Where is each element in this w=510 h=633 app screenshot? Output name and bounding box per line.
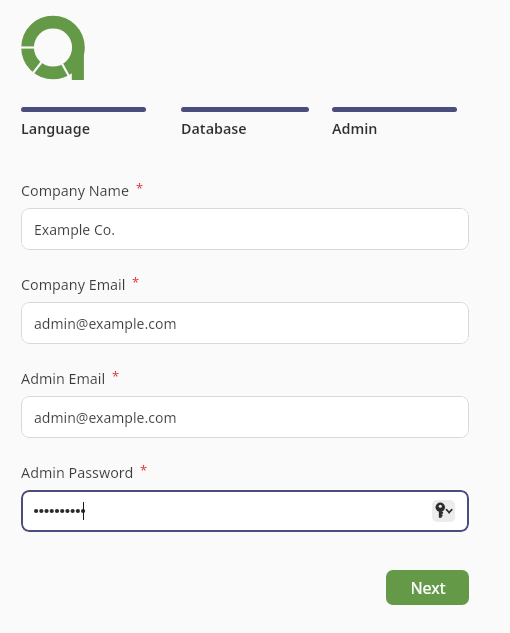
staticText: admin@example.com (34, 314, 177, 333)
staticText: Company Email (21, 275, 126, 294)
staticText: Language (21, 119, 91, 138)
staticText: Admin Email (21, 369, 106, 388)
staticText: * (140, 461, 148, 479)
button[interactable]: Password manager (21, 490, 469, 532)
button[interactable]: admin@example.com (21, 302, 469, 344)
staticText: * (112, 367, 120, 385)
button[interactable]: Next (386, 570, 469, 605)
staticText: Company Name (21, 181, 130, 200)
button[interactable]: Password manager (432, 500, 455, 522)
staticText: Admin Password (21, 463, 134, 482)
button[interactable]: admin@example.com (21, 396, 469, 438)
staticText: Admin (332, 119, 378, 138)
staticText: admin@example.com (34, 408, 177, 427)
button[interactable]: Example Co. (21, 208, 469, 250)
staticText: * (132, 273, 140, 291)
staticText: Example Co. (34, 220, 115, 239)
staticText: Database (181, 119, 247, 138)
staticText: * (136, 179, 144, 197)
staticText: Next (410, 577, 446, 599)
